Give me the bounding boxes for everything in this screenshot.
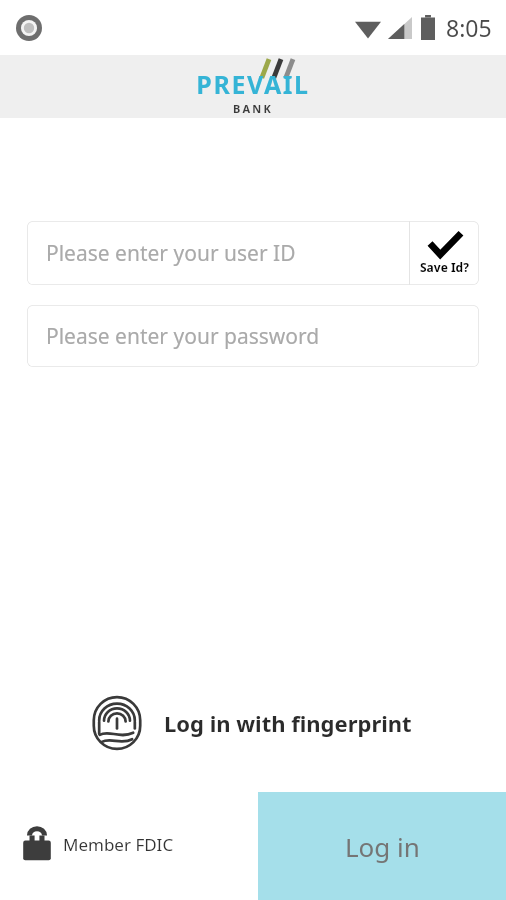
button[interactable]: Fingerprint (90, 690, 412, 756)
staticText: BANK (233, 101, 273, 116)
staticText: Please enter your password (46, 322, 320, 351)
button[interactable]: Please enter your password (27, 305, 479, 367)
button[interactable]: Please enter your user ID (27, 221, 409, 285)
staticText: PREVAIL (196, 67, 310, 101)
staticText: Save Id? (420, 259, 469, 275)
staticText: Please enter your user ID (46, 239, 296, 268)
staticText: Member FDIC (63, 833, 174, 856)
staticText: Log in with fingerprint (164, 708, 412, 738)
button[interactable]: Member FDIC (22, 818, 174, 870)
button[interactable]: Save Id? (410, 221, 479, 285)
staticText: 8:05 (446, 12, 492, 43)
staticText: Log in (345, 829, 420, 864)
button[interactable]: Log in (258, 792, 506, 900)
other: Fingerprint (90, 696, 144, 750)
